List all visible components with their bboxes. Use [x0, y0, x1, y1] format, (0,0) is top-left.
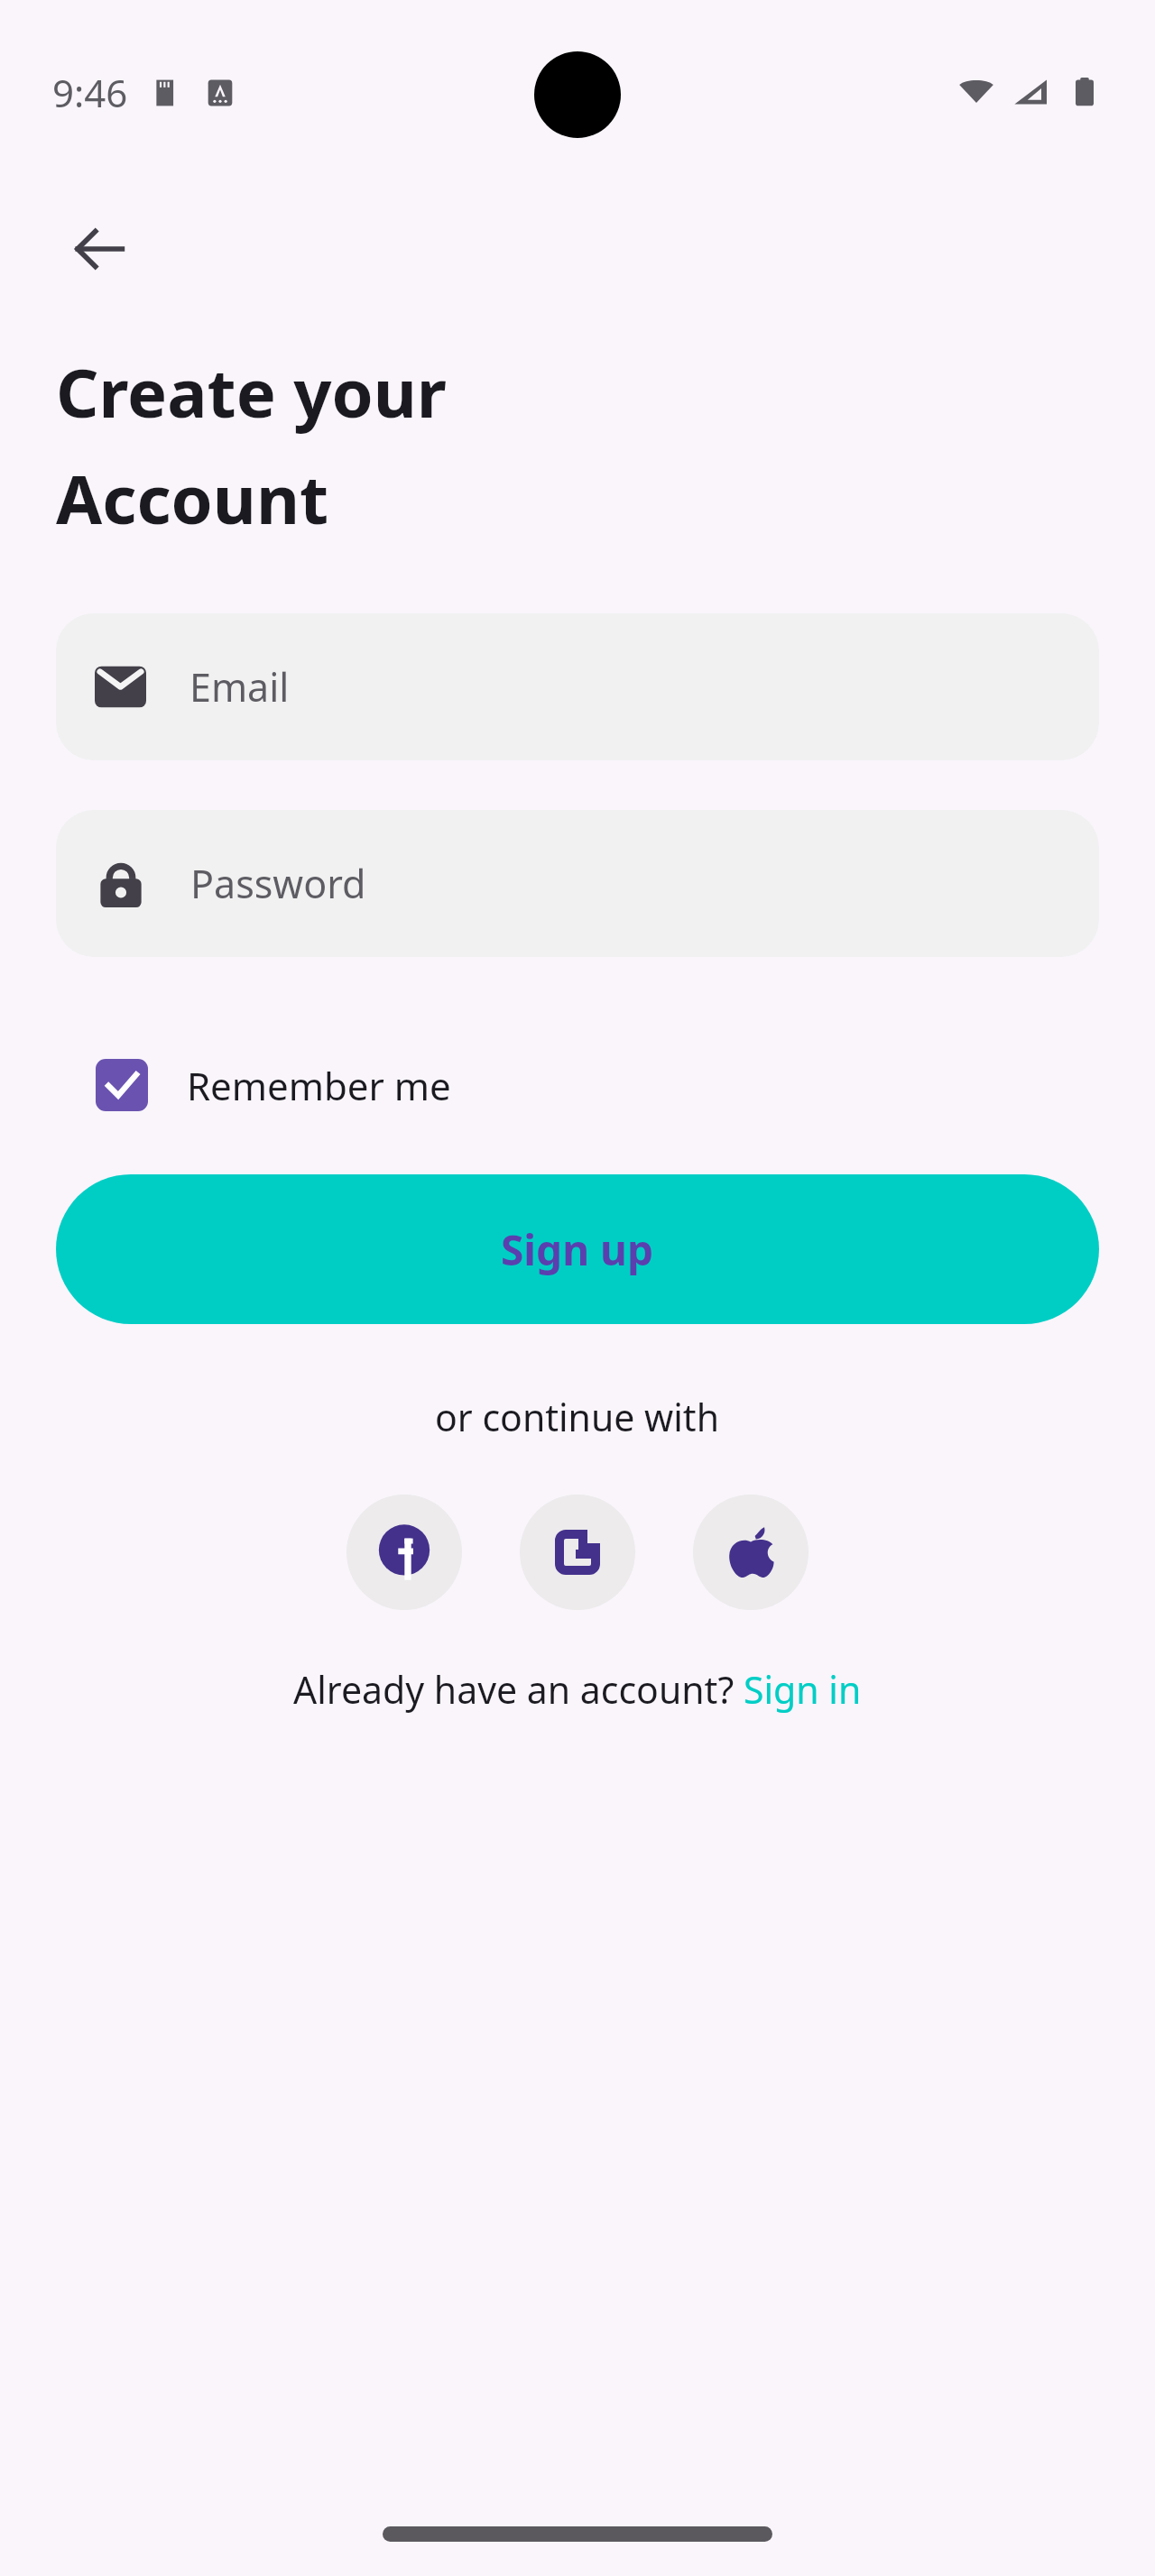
staticText: Already have an account?	[293, 1664, 744, 1715]
staticText: Remember me	[187, 1060, 451, 1111]
button[interactable]: Sign in	[744, 1664, 862, 1715]
button[interactable]: Remember me	[90, 1052, 457, 1118]
button[interactable]: Sign up with Facebook	[346, 1495, 462, 1610]
staticText: or continue with	[435, 1392, 720, 1442]
button[interactable]: Password	[56, 810, 1099, 957]
button[interactable]: Sign up with Apple	[693, 1495, 808, 1610]
staticText: Password	[190, 857, 366, 910]
staticText: 9:46	[52, 67, 128, 118]
button[interactable]: Sign up with Google	[520, 1495, 635, 1610]
staticText: Sign up	[501, 1221, 654, 1278]
button[interactable]: Back	[56, 206, 143, 292]
staticText: Sign in	[744, 1664, 862, 1715]
staticText: Create your Account	[56, 346, 447, 543]
button[interactable]: Sign up	[56, 1174, 1099, 1324]
button[interactable]: Email	[56, 613, 1099, 760]
staticText: Email	[189, 660, 290, 713]
